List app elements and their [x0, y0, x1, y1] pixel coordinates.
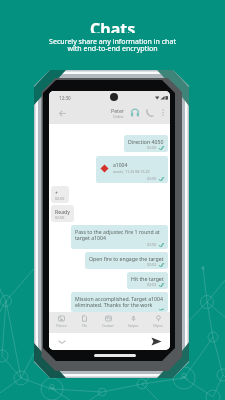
button[interactable]: Headphones — [128, 106, 142, 120]
staticText: a1004 — [113, 162, 128, 169]
button[interactable]: Direction 4050 — [124, 135, 168, 152]
button[interactable]: Contact — [101, 315, 115, 328]
button[interactable]: Open fire to engage the target — [85, 252, 168, 269]
staticText: Peter — [111, 107, 125, 114]
button[interactable]: Picture — [55, 315, 68, 328]
staticText: movie, 11.23 08.15.23 — [113, 169, 150, 174]
staticText: Contact — [102, 324, 114, 328]
staticText: Mission accomplished. Target a1004 elimi… — [75, 295, 164, 309]
staticText: Ready — [55, 208, 70, 215]
button[interactable]: a1004 — [96, 156, 168, 183]
button[interactable]: Pass to the adjuster, fire 1 round at ta… — [71, 225, 168, 249]
staticText: 12:30 — [59, 95, 71, 101]
staticText: Object — [153, 324, 163, 328]
button[interactable]: File — [80, 315, 89, 328]
staticText: 02:52 — [147, 282, 157, 287]
staticText: 02:50 — [147, 176, 157, 181]
staticText: Picture — [56, 324, 67, 328]
button[interactable]: More options — [157, 106, 169, 118]
staticText: + — [55, 189, 58, 196]
button[interactable]: Send — [150, 335, 163, 348]
button[interactable]: Object — [152, 315, 164, 328]
staticText: Chats — [90, 18, 136, 33]
staticText: Open fire to engage the target — [89, 255, 164, 262]
staticText: Direction 4050 — [128, 138, 164, 145]
staticText: 02:50 — [55, 215, 65, 220]
staticText: Pass to the adjuster, fire 1 round at ta… — [75, 228, 164, 242]
staticText: Swipes — [128, 324, 139, 328]
staticText: Online — [113, 114, 124, 119]
button[interactable]: Ready — [51, 205, 74, 222]
button[interactable]: Call — [143, 106, 157, 120]
staticText: 02:50 — [147, 145, 157, 150]
staticText: Hit the target — [131, 275, 164, 282]
staticText: 02:50 — [55, 196, 65, 201]
button[interactable]: Back — [55, 106, 69, 120]
staticText: 02:50 — [147, 242, 157, 247]
button[interactable]: Hit the target — [127, 272, 168, 289]
button[interactable]: Collapse — [56, 336, 67, 347]
staticText: File — [82, 324, 88, 328]
staticText: 02:52 — [147, 262, 157, 267]
staticText: Securely share any information in chat w… — [49, 36, 176, 54]
button[interactable]: Swipes — [127, 315, 140, 328]
button[interactable]: Mission accomplished. Target a1004 elimi… — [71, 292, 168, 312]
button[interactable]: + — [51, 186, 69, 203]
